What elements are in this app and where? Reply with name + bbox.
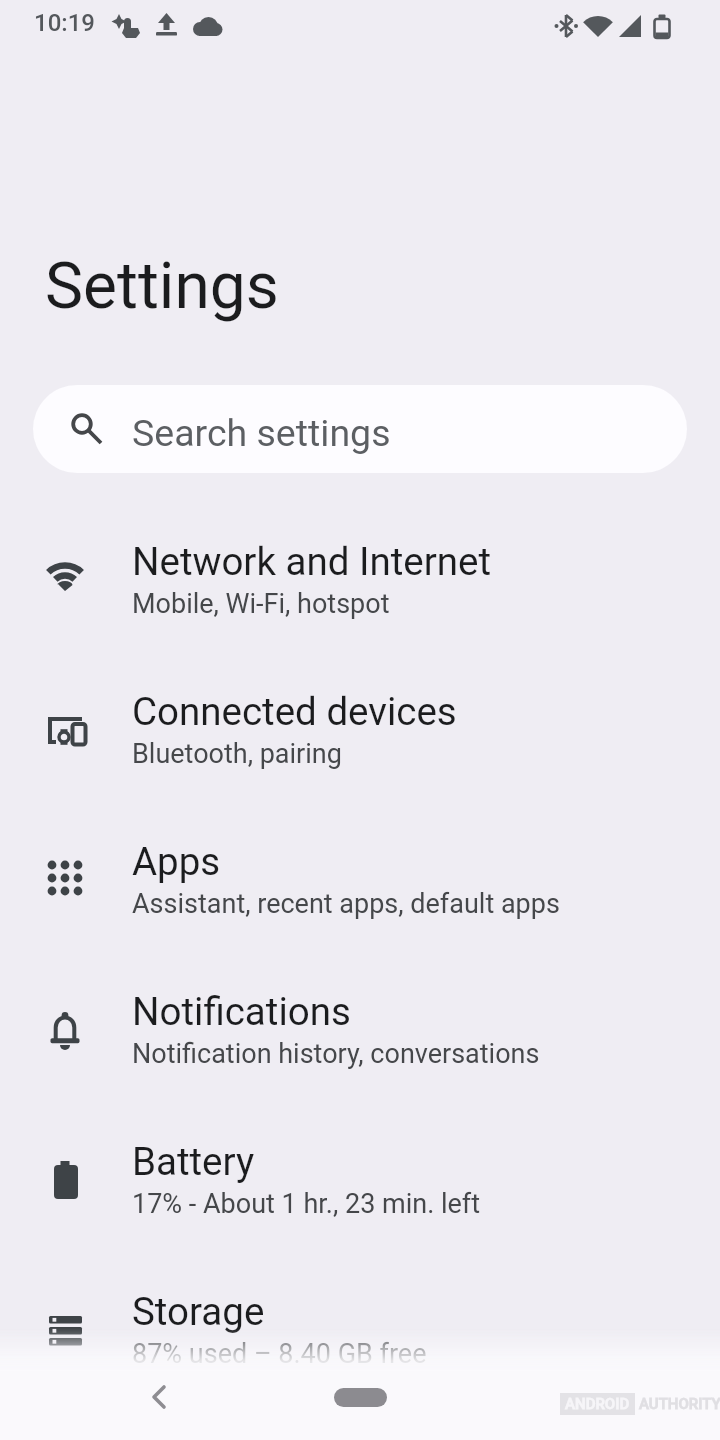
- staticText: Assistant, recent apps, default apps: [132, 888, 560, 920]
- staticText: 17% - About 1 hr., 23 min. left: [132, 1188, 481, 1220]
- button[interactable]: Storage: [0, 1255, 720, 1401]
- staticText: Apps: [132, 839, 221, 884]
- button[interactable]: Search settings: [33, 385, 687, 473]
- staticText: 10:19: [34, 9, 95, 37]
- staticText: Search settings: [132, 411, 391, 455]
- staticText: Notification history, conversations: [132, 1038, 540, 1070]
- staticText: Bluetooth, pairing: [132, 738, 342, 770]
- staticText: ANDROID: [565, 1395, 630, 1413]
- button[interactable]: Connected devices: [0, 655, 720, 801]
- button[interactable]: Notifications: [0, 955, 720, 1101]
- button[interactable]: [136, 1376, 180, 1420]
- staticText: 87% used – 8.40 GB free: [132, 1338, 427, 1370]
- staticText: Network and Internet: [132, 539, 492, 584]
- staticText: Settings: [45, 249, 279, 324]
- button[interactable]: Apps: [0, 805, 720, 951]
- staticText: AUTHORITY: [639, 1395, 720, 1413]
- staticText: Storage: [132, 1289, 265, 1334]
- staticText: Notifications: [132, 989, 351, 1034]
- staticText: Mobile, Wi-Fi, hotspot: [132, 588, 390, 620]
- button[interactable]: [334, 1388, 387, 1407]
- staticText: Battery: [132, 1139, 255, 1184]
- staticText: Connected devices: [132, 689, 457, 734]
- button[interactable]: Network and Internet: [0, 505, 720, 651]
- button[interactable]: Battery: [0, 1105, 720, 1251]
